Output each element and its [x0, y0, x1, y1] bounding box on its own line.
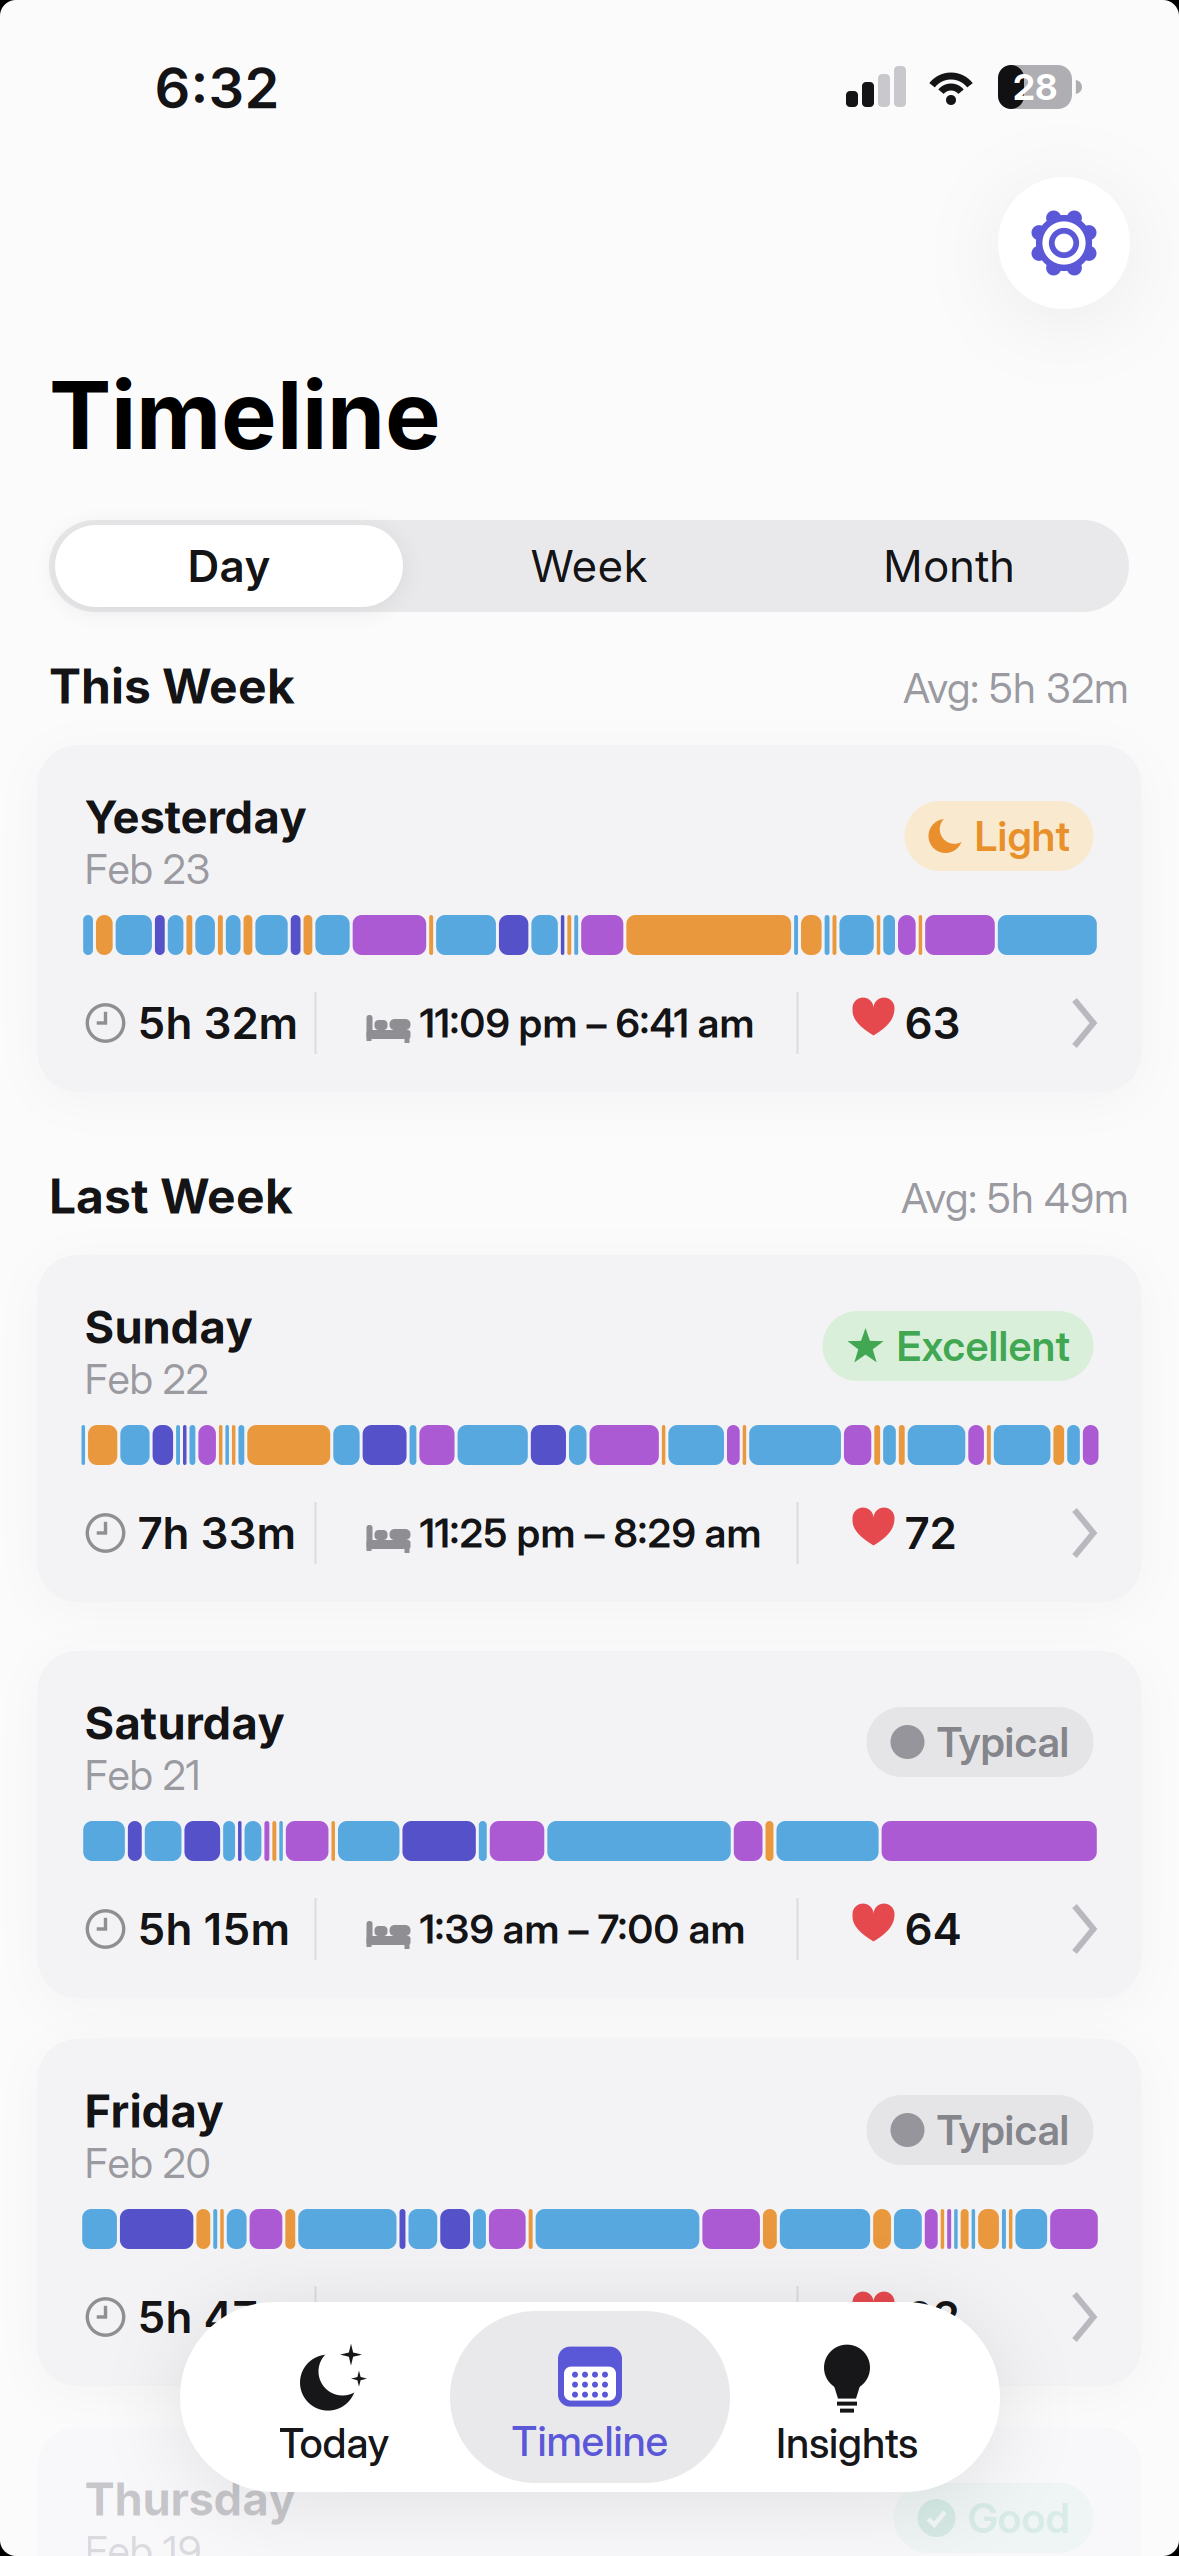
- button[interactable]: Timeline: [460, 2316, 720, 2496]
- staticText: 11:09 pm – 6:41 am: [419, 999, 754, 1047]
- staticText: 64: [904, 1903, 961, 1955]
- staticText: 1:39 am – 7:00 am: [419, 1905, 745, 1953]
- staticText: 6:32: [154, 55, 279, 121]
- button[interactable]: Week: [409, 520, 769, 612]
- staticText: Thursday: [84, 2472, 295, 2526]
- staticText: Typical: [936, 2106, 1069, 2154]
- staticText: Yesterday: [84, 790, 306, 844]
- staticText: Friday: [84, 2084, 223, 2138]
- button[interactable]: Sunday: [37, 1255, 1141, 1602]
- staticText: Last Week: [49, 1168, 293, 1224]
- staticText: Insights: [776, 2419, 918, 2467]
- button[interactable]: Saturday: [37, 1651, 1141, 1998]
- staticText: Feb 21: [84, 1751, 200, 1799]
- staticText: Light: [974, 812, 1069, 860]
- button[interactable]: Thursday: [37, 2427, 1141, 2556]
- staticText: 63: [904, 997, 960, 1049]
- staticText: Feb 23: [84, 845, 210, 893]
- staticText: 12:39 am – 6:58 am: [419, 2293, 769, 2341]
- button[interactable]: Friday: [37, 2039, 1141, 2386]
- staticText: 28: [1013, 66, 1057, 108]
- staticText: Feb 20: [84, 2139, 210, 2187]
- staticText: 72: [904, 1507, 956, 1559]
- staticText: 5h 47m: [137, 2291, 295, 2343]
- staticText: This Week: [49, 658, 295, 714]
- staticText: Good: [967, 2494, 1069, 2542]
- staticText: 62: [904, 2291, 959, 2343]
- staticText: Feb 22: [84, 1355, 208, 1403]
- staticText: Week: [530, 540, 647, 592]
- staticText: Day: [187, 540, 270, 592]
- staticText: Saturday: [84, 1696, 284, 1750]
- staticText: Feb 19: [84, 2527, 201, 2556]
- button[interactable]: Month: [769, 520, 1129, 612]
- button[interactable]: Settings: [998, 177, 1130, 309]
- button[interactable]: Today: [209, 2316, 459, 2496]
- staticText: Month: [883, 540, 1015, 592]
- button[interactable]: Day: [55, 520, 403, 612]
- staticText: Avg: 5h 32m: [903, 664, 1129, 712]
- staticText: Excellent: [896, 1322, 1069, 1370]
- staticText: Today: [278, 2419, 389, 2467]
- button[interactable]: Insights: [722, 2316, 972, 2496]
- staticText: Timeline: [49, 360, 441, 470]
- staticText: 5h 15m: [137, 1903, 290, 1955]
- staticText: 11:25 pm – 8:29 am: [419, 1509, 761, 1557]
- button[interactable]: Yesterday: [37, 745, 1141, 1092]
- staticText: Avg: 5h 49m: [901, 1174, 1129, 1222]
- staticText: 7h 33m: [137, 1507, 296, 1559]
- staticText: Typical: [936, 1718, 1069, 1766]
- staticText: 5h 32m: [137, 997, 298, 1049]
- staticText: Timeline: [511, 2417, 668, 2465]
- staticText: Sunday: [84, 1300, 252, 1354]
